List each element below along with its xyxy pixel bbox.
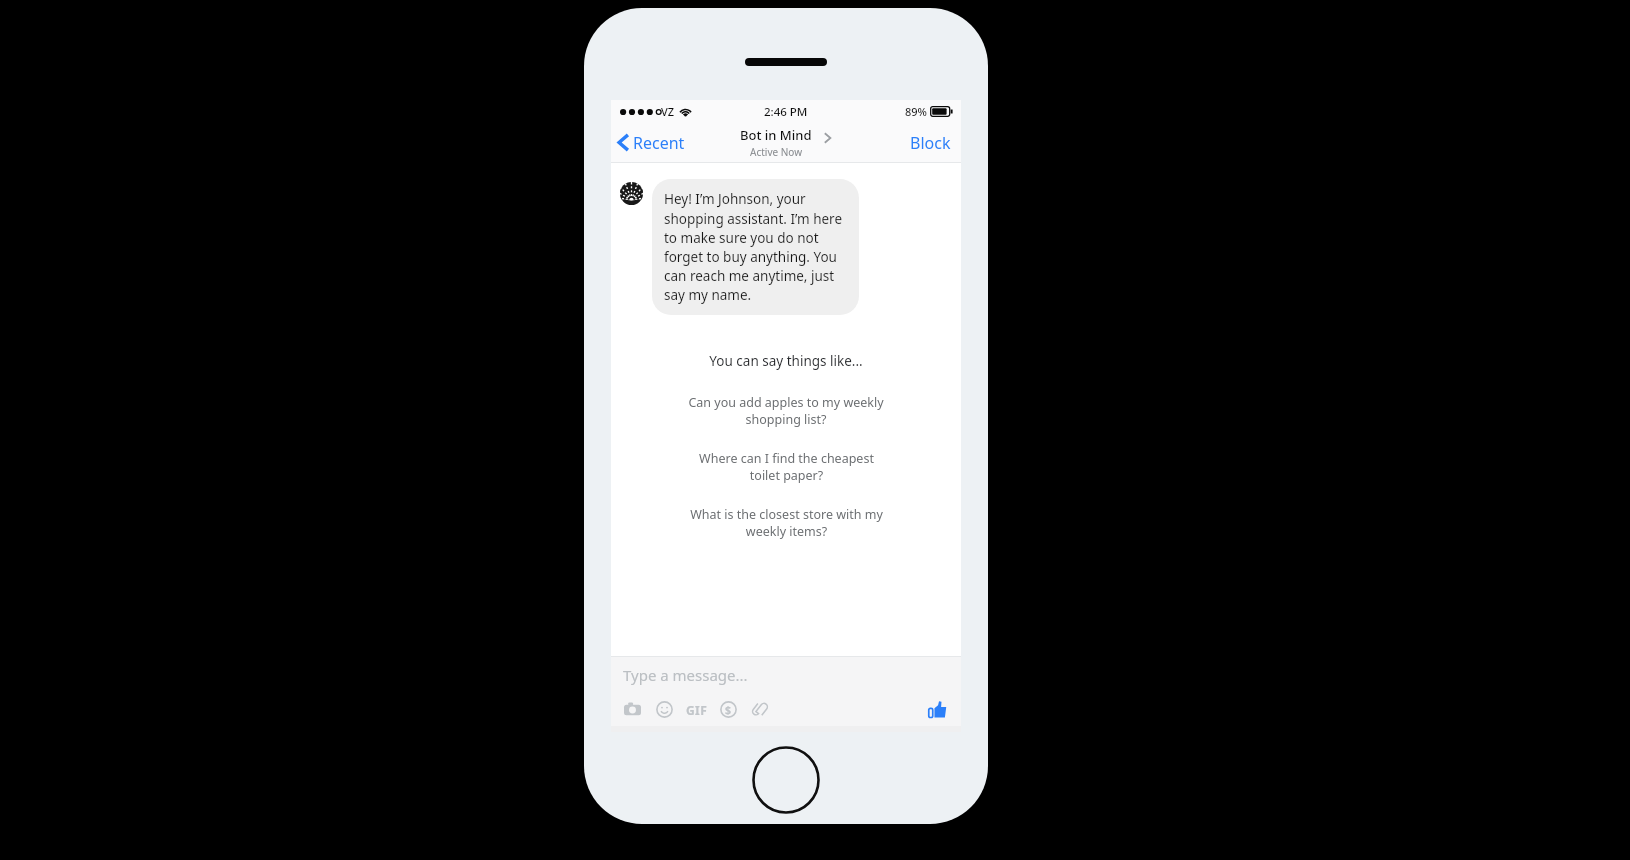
button[interactable]: Bot in Mind: [740, 126, 832, 159]
staticText: Bot in Mind: [740, 126, 812, 144]
button[interactable]: Home: [752, 746, 820, 814]
button[interactable]: Type a message...: [611, 657, 961, 692]
button[interactable]: What is the closest store with my weekly…: [682, 505, 891, 541]
button[interactable]: Where can I find the cheapest toilet pap…: [691, 449, 882, 485]
staticText: Recent: [633, 132, 685, 154]
staticText: 89%: [905, 104, 927, 119]
button[interactable]: You can say things like...: [707, 350, 865, 372]
button[interactable]: Block: [900, 123, 961, 162]
staticText: Hey! I’m Johnson, your shopping assistan…: [664, 190, 847, 304]
button[interactable]: Recent: [611, 123, 693, 162]
staticText: 2:46 PM: [764, 104, 808, 120]
staticText: What is the closest store with my weekly…: [690, 506, 883, 540]
button[interactable]: Attach: [748, 697, 773, 722]
staticText: Active Now: [750, 145, 803, 159]
button[interactable]: Can you add apples to my weekly shopping…: [680, 393, 892, 429]
button[interactable]: Like: [924, 696, 950, 722]
staticText: Can you add apples to my weekly shopping…: [688, 394, 884, 428]
staticText: You can say things like...: [709, 352, 863, 370]
button[interactable]: Hey! I’m Johnson, your shopping assistan…: [652, 179, 859, 315]
staticText: Where can I find the cheapest toilet pap…: [699, 450, 874, 484]
staticText: $: [725, 703, 732, 717]
staticText: Block: [910, 132, 951, 154]
staticText: GIF: [686, 702, 708, 718]
button[interactable]: GIF: [684, 697, 709, 722]
staticText: Type a message...: [623, 665, 748, 685]
button[interactable]: Stickers: [652, 697, 677, 722]
staticText: VZ: [661, 104, 675, 119]
button[interactable]: Payments: [716, 697, 741, 722]
button[interactable]: Camera: [620, 697, 645, 722]
